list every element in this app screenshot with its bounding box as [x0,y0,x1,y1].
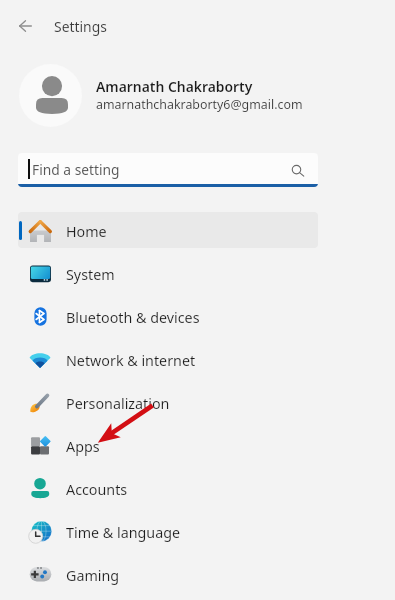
button[interactable]: Home [18,212,318,248]
button[interactable]: Find a setting [18,153,318,187]
staticText: Accounts [66,480,128,499]
staticText: Amarnath Chakraborty [96,77,253,96]
button[interactable]: Back [9,10,40,41]
button[interactable]: Personalization [18,384,318,420]
button[interactable]: Time & language [18,513,318,549]
staticText: Settings [54,17,107,36]
staticText: Apps [66,437,100,456]
staticText: Network & internet [66,351,196,370]
button[interactable]: System [18,255,318,291]
staticText: Gaming [66,566,120,585]
staticText: System [66,265,115,284]
button[interactable]: Bluetooth & devices [18,298,318,334]
staticText: amarnathchakraborty6@gmail.com [96,96,303,113]
button[interactable]: Gaming [18,556,318,592]
button[interactable]: Accounts [18,470,318,506]
staticText: Personalization [66,394,170,413]
button[interactable]: Network & internet [18,341,318,377]
button[interactable]: Apps [18,427,318,463]
staticText: Home [66,222,107,241]
button[interactable]: Account avatar [19,64,82,127]
staticText: Find a setting [32,160,120,179]
staticText: Time & language [66,523,181,542]
staticText: Bluetooth & devices [66,308,200,327]
